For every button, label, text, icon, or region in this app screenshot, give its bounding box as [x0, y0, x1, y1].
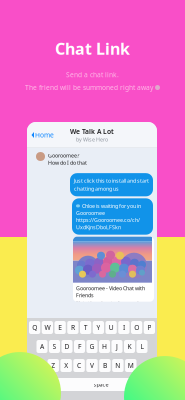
button[interactable]: K — [124, 340, 135, 353]
button[interactable]: Gooroomee - Video Chat with Friends — [73, 237, 154, 302]
staticText: https://Gooroomee.co/ch/ — [76, 216, 140, 224]
staticText: H — [102, 342, 107, 351]
button[interactable]: V — [86, 359, 98, 372]
staticText: space — [93, 381, 108, 388]
staticText: O — [134, 323, 139, 332]
staticText: How do I do that — [48, 159, 87, 166]
staticText: Gooroomee — [76, 209, 105, 216]
staticText: Gooroomee - Video Chat with Friends — [76, 285, 145, 299]
button[interactable]: F — [74, 340, 85, 353]
staticText: R — [71, 323, 75, 332]
staticText: K — [127, 342, 131, 351]
button[interactable]: E — [54, 321, 66, 334]
button[interactable]: N — [112, 359, 123, 372]
button[interactable]: J — [111, 340, 122, 353]
button[interactable]: W — [42, 321, 53, 334]
staticText: U — [109, 323, 114, 332]
button[interactable]: R — [67, 321, 78, 334]
staticText: C — [77, 361, 81, 370]
button[interactable]: I — [118, 321, 129, 334]
staticText: S — [52, 342, 56, 351]
staticText: M — [128, 361, 134, 370]
staticText: Home — [35, 131, 54, 139]
button[interactable]: X — [60, 359, 72, 372]
staticText: L — [140, 342, 143, 351]
staticText: Just click this to install and start — [74, 177, 149, 184]
staticText: G — [89, 342, 94, 351]
button[interactable]: Q — [29, 321, 40, 334]
button[interactable]: Home — [27, 127, 54, 143]
staticText: Chloe is waiting for you in — [82, 202, 141, 209]
button[interactable]: Z — [47, 359, 59, 372]
button[interactable]: M — [125, 359, 136, 372]
button[interactable]: L — [136, 340, 147, 353]
staticText: The friend will be summoned right away — [25, 83, 153, 92]
staticText: Gooroomee? — [48, 152, 79, 159]
staticText: Q — [32, 323, 37, 332]
staticText: chatting among us — [74, 185, 119, 192]
staticText: J — [116, 342, 118, 351]
staticText: Z — [51, 361, 55, 370]
staticText: Send a chat link. — [66, 70, 119, 79]
button[interactable]: T — [80, 321, 91, 334]
staticText: N — [115, 361, 120, 370]
button[interactable]: G — [86, 340, 97, 353]
staticText: P — [147, 323, 151, 332]
staticText: A — [40, 342, 44, 351]
staticText: Chat, video and create a free second ago… — [76, 300, 146, 305]
staticText: D — [64, 342, 69, 351]
staticText: T — [84, 323, 88, 332]
staticText: V — [90, 361, 94, 370]
staticText: We Talk A Lot — [70, 127, 114, 136]
staticText: I — [123, 323, 125, 332]
button[interactable]: Y — [93, 321, 104, 334]
button[interactable]: Dictate — [29, 378, 45, 391]
button[interactable]: U — [105, 321, 117, 334]
staticText: Chat Link — [55, 38, 130, 59]
button[interactable]: A — [36, 340, 47, 353]
staticText: X — [64, 361, 68, 370]
button[interactable]: space — [47, 378, 155, 391]
button[interactable]: O — [131, 321, 142, 334]
staticText: F — [78, 342, 81, 351]
staticText: by Wise Hero — [76, 136, 108, 143]
staticText: E — [58, 323, 62, 332]
staticText: W — [44, 323, 50, 332]
button[interactable]: P — [144, 321, 155, 334]
button[interactable]: B — [99, 359, 111, 372]
staticText: Y — [96, 323, 100, 332]
button[interactable]: D — [61, 340, 72, 353]
staticText: B — [103, 361, 107, 370]
button[interactable]: H — [99, 340, 110, 353]
button[interactable]: C — [73, 359, 85, 372]
staticText: UxdKjnsDboLFSkn — [76, 224, 121, 231]
button[interactable]: S — [49, 340, 60, 353]
